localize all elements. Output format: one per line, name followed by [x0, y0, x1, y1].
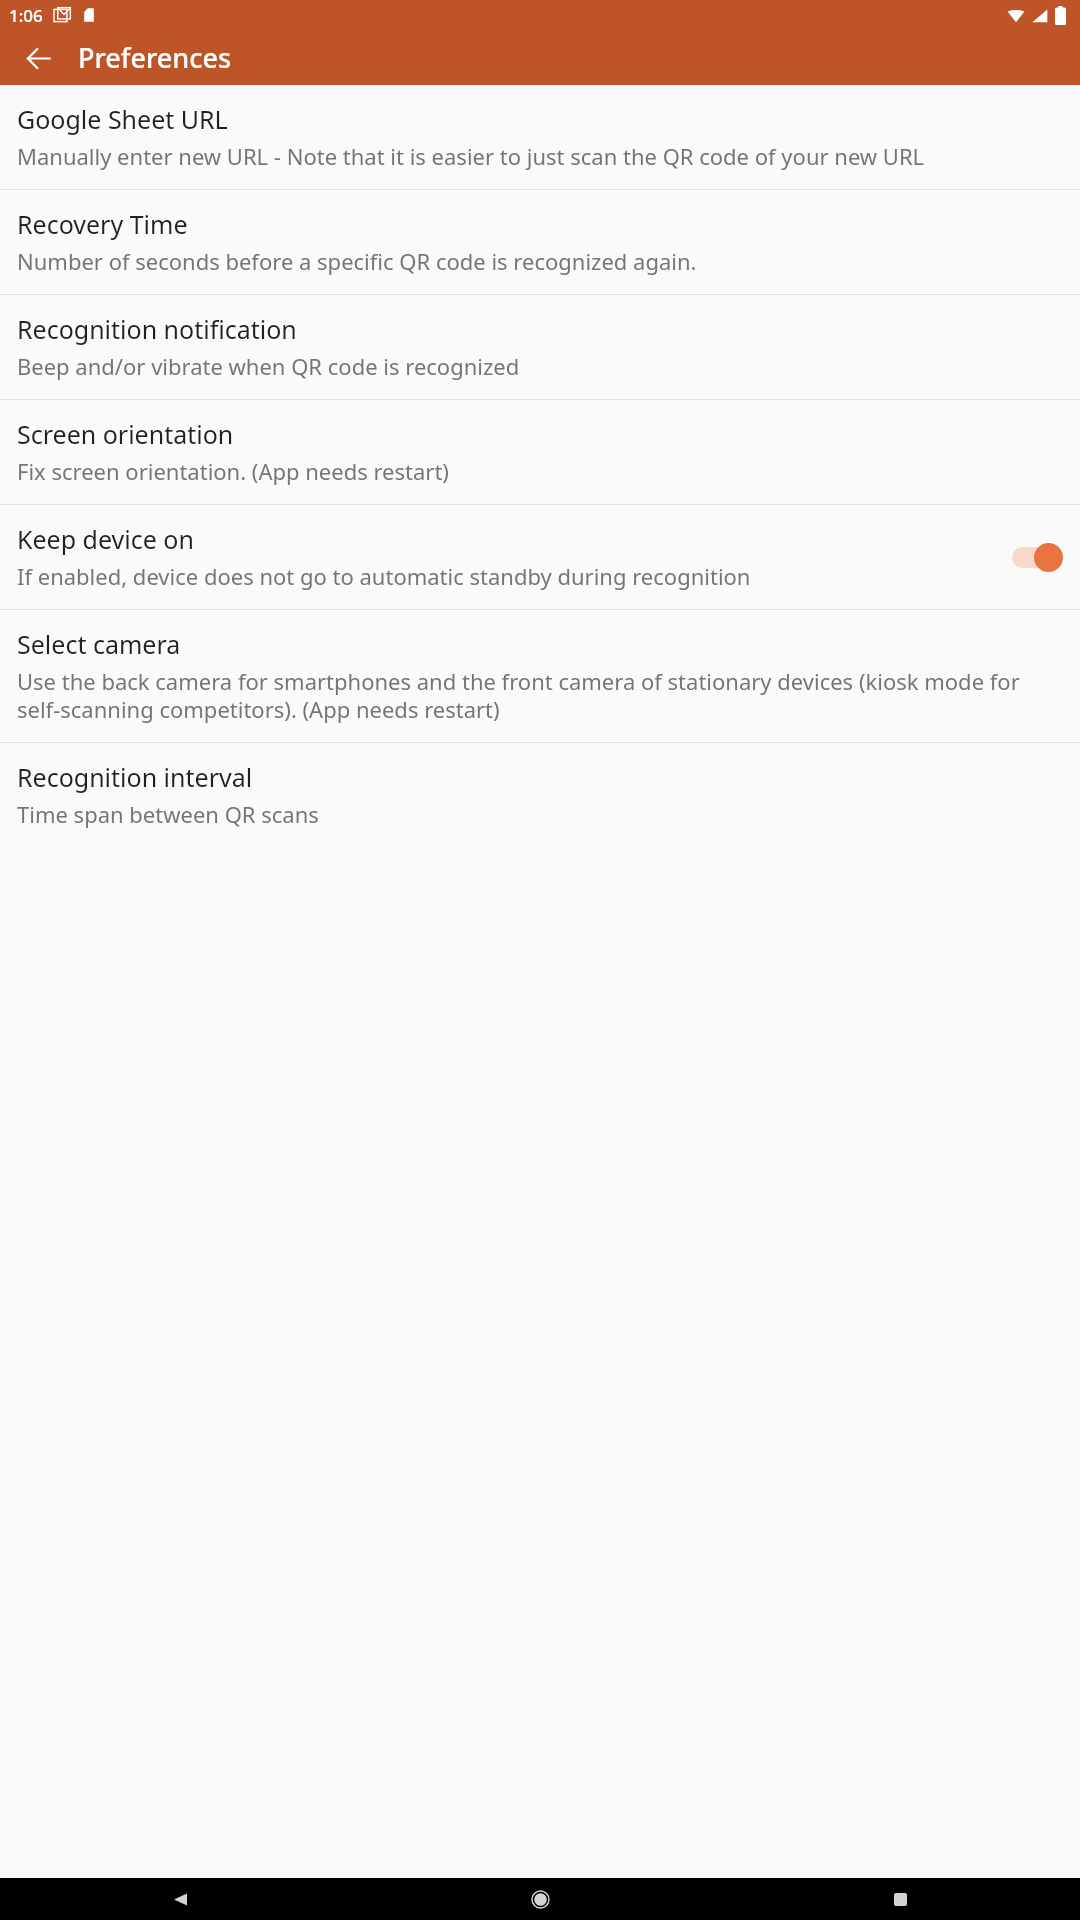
button[interactable]: Recognition notification: [0, 295, 1080, 399]
button[interactable]: Google Sheet URL: [0, 85, 1080, 189]
button[interactable]: Keep device on: [0, 505, 1080, 609]
staticText: 1:06: [9, 4, 43, 27]
staticText: Keep device on: [17, 522, 194, 556]
button[interactable]: Screen orientation: [0, 400, 1080, 504]
button[interactable]: Back: [0, 1878, 360, 1920]
staticText: Preferences: [78, 39, 232, 76]
button[interactable]: Keep device on toggle: [1011, 542, 1063, 572]
staticText: Screen orientation: [17, 417, 234, 451]
button[interactable]: Select camera: [0, 610, 1080, 742]
staticText: Recovery Time: [17, 207, 188, 241]
staticText: Fix screen orientation. (App needs resta…: [17, 456, 449, 486]
staticText: Time span between QR scans: [17, 799, 319, 829]
staticText: Use the back camera for smartphones and …: [17, 666, 1063, 724]
staticText: Recognition notification: [17, 312, 297, 346]
staticText: Select camera: [17, 627, 181, 661]
staticText: Manually enter new URL - Note that it is…: [17, 141, 925, 171]
staticText: Number of seconds before a specific QR c…: [17, 246, 697, 276]
button[interactable]: Recognition interval: [0, 743, 1080, 847]
staticText: If enabled, device does not go to automa…: [17, 561, 751, 591]
button[interactable]: Back: [14, 34, 62, 82]
button[interactable]: Recovery Time: [0, 190, 1080, 294]
staticText: Google Sheet URL: [17, 102, 228, 136]
staticText: Beep and/or vibrate when QR code is reco…: [17, 351, 520, 381]
button[interactable]: Recents: [720, 1878, 1080, 1920]
staticText: Recognition interval: [17, 760, 253, 794]
button[interactable]: Home: [360, 1878, 720, 1920]
